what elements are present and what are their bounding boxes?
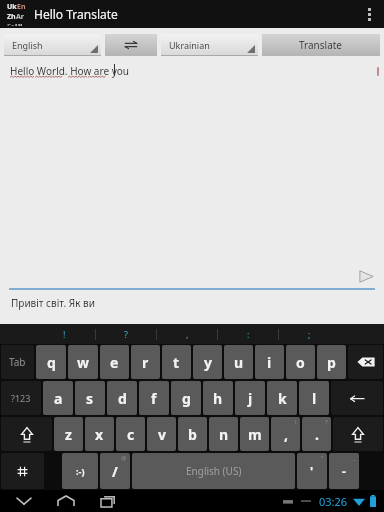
staticText: Hello World. How are you xyxy=(10,64,129,78)
button[interactable]: t xyxy=(162,345,191,379)
button[interactable]: z xyxy=(54,417,83,451)
staticText: i xyxy=(267,353,272,372)
button[interactable]: i xyxy=(255,345,284,379)
button[interactable]: h xyxy=(203,381,233,415)
staticText: u xyxy=(234,353,244,372)
button[interactable] xyxy=(333,417,383,451)
staticText: , xyxy=(284,425,288,444)
staticText: d xyxy=(118,389,127,408)
button[interactable]: :-) xyxy=(62,453,98,489)
staticText: c xyxy=(127,425,135,444)
button[interactable]: g xyxy=(171,381,201,415)
button[interactable]: s xyxy=(75,381,105,415)
staticText: s xyxy=(86,389,94,408)
button[interactable]: Back xyxy=(10,491,38,511)
staticText: ? xyxy=(124,328,128,340)
button[interactable]: l xyxy=(299,381,329,415)
staticText: ; xyxy=(308,328,311,340)
button[interactable]: ? xyxy=(96,324,156,344)
button[interactable]: q xyxy=(36,345,66,379)
button[interactable]: k xyxy=(267,381,297,415)
button[interactable]: u xyxy=(224,345,253,379)
staticText: ? xyxy=(325,418,328,426)
staticText: w xyxy=(77,353,89,372)
staticText: o xyxy=(296,353,305,372)
button[interactable]: m xyxy=(240,417,269,451)
button[interactable]: ! xyxy=(34,324,95,344)
staticText: " xyxy=(321,454,324,462)
staticText: . xyxy=(315,425,319,444)
staticText: Hi xyxy=(15,22,23,26)
button[interactable] xyxy=(1,453,44,489)
button[interactable]: a xyxy=(43,381,73,415)
staticText: Ar xyxy=(16,12,24,22)
button[interactable]: , xyxy=(157,324,217,344)
staticText: ! xyxy=(295,418,297,426)
button[interactable]: Ukrainian xyxy=(161,34,258,56)
button[interactable]: f xyxy=(139,381,169,415)
button[interactable]: c xyxy=(116,417,145,451)
staticText: k xyxy=(278,389,287,408)
button[interactable]: x xyxy=(85,417,114,451)
staticText: ?123 xyxy=(11,392,31,404)
staticText: l xyxy=(312,389,317,408)
button[interactable]: Recent apps xyxy=(94,491,122,511)
staticText: Ukrainian xyxy=(169,39,210,51)
button[interactable]: n xyxy=(209,417,238,451)
staticText: g xyxy=(182,389,191,408)
button[interactable]: d xyxy=(107,381,137,415)
staticText: , xyxy=(186,328,189,340)
button[interactable]: ! xyxy=(271,417,300,451)
button[interactable]: Tab xyxy=(1,345,34,379)
staticText: x xyxy=(95,425,104,444)
button[interactable]: Translate xyxy=(262,34,380,56)
staticText: - xyxy=(342,463,346,479)
staticText: Zh xyxy=(7,12,16,22)
staticText: ! xyxy=(63,328,66,340)
button[interactable]: @ xyxy=(100,453,130,489)
button[interactable]: v xyxy=(147,417,176,451)
button[interactable] xyxy=(348,345,383,379)
staticText: r xyxy=(142,353,149,372)
staticText: Tab xyxy=(9,355,26,369)
button[interactable]: _ xyxy=(329,453,359,489)
staticText: j xyxy=(248,389,253,408)
button[interactable]: More options xyxy=(358,0,380,28)
button[interactable] xyxy=(331,381,383,415)
button[interactable]: o xyxy=(286,345,315,379)
button[interactable]: Speak translation xyxy=(356,268,376,284)
button[interactable]: p xyxy=(317,345,346,379)
staticText: Привіт світ. Як ви xyxy=(11,296,95,310)
button[interactable]: English xyxy=(4,34,101,56)
button[interactable]: w xyxy=(68,345,98,379)
button[interactable]: j xyxy=(235,381,265,415)
button[interactable]: e xyxy=(100,345,129,379)
staticText: ' xyxy=(310,463,314,479)
staticText: y xyxy=(204,353,212,372)
staticText: h xyxy=(213,389,223,408)
staticText: v xyxy=(158,425,166,444)
staticText: English (US) xyxy=(186,464,242,478)
staticText: a xyxy=(54,389,63,408)
button[interactable]: " xyxy=(297,453,327,489)
button[interactable]: ? xyxy=(302,417,331,451)
staticText: / xyxy=(112,462,118,481)
button[interactable]: : xyxy=(218,324,278,344)
button[interactable] xyxy=(1,417,52,451)
button[interactable]: Home xyxy=(52,491,80,511)
button[interactable]: b xyxy=(178,417,207,451)
staticText: e xyxy=(110,353,119,372)
staticText: Uk xyxy=(7,2,17,12)
button[interactable]: ?123 xyxy=(1,381,41,415)
staticText: Hello Translate xyxy=(34,6,118,22)
staticText: n xyxy=(219,425,229,444)
staticText: : xyxy=(247,328,250,340)
staticText: En xyxy=(17,2,26,12)
staticText: f xyxy=(151,389,157,408)
button[interactable]: English (US) xyxy=(132,453,295,489)
button[interactable]: ; xyxy=(279,324,339,344)
button[interactable]: r xyxy=(131,345,160,379)
staticText: :-) xyxy=(76,465,85,477)
button[interactable]: y xyxy=(193,345,222,379)
button[interactable]: Swap languages xyxy=(105,34,157,56)
